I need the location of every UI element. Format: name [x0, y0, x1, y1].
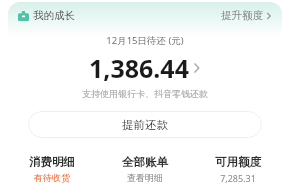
button[interactable]: 1,386.44: [8, 51, 282, 85]
staticText: 提升额度: [221, 9, 263, 22]
staticText: 查看明细: [127, 172, 163, 183]
button[interactable]: 可用额度: [191, 155, 284, 184]
staticText: 1,386.44: [89, 51, 189, 85]
staticText: 全部账单: [122, 155, 168, 169]
staticText: 有待收货: [34, 172, 70, 183]
staticText: 12月15日待还 (元): [8, 34, 282, 47]
staticText: 7,285.31: [220, 172, 256, 184]
staticText: 支持使用银行卡、抖音零钱还款: [8, 88, 282, 99]
button[interactable]: 全部账单: [98, 155, 191, 183]
staticText: 消费明细: [29, 155, 75, 169]
staticText: 我的成长: [33, 9, 75, 22]
button[interactable]: 提前还款: [28, 111, 262, 138]
staticText: 提前还款: [122, 118, 168, 132]
button[interactable]: 我的成长: [18, 9, 75, 22]
button[interactable]: 消费明细: [6, 155, 98, 183]
button[interactable]: 提升额度: [221, 9, 272, 22]
staticText: 可用额度: [215, 155, 261, 169]
other: 提升额度: [266, 12, 272, 20]
